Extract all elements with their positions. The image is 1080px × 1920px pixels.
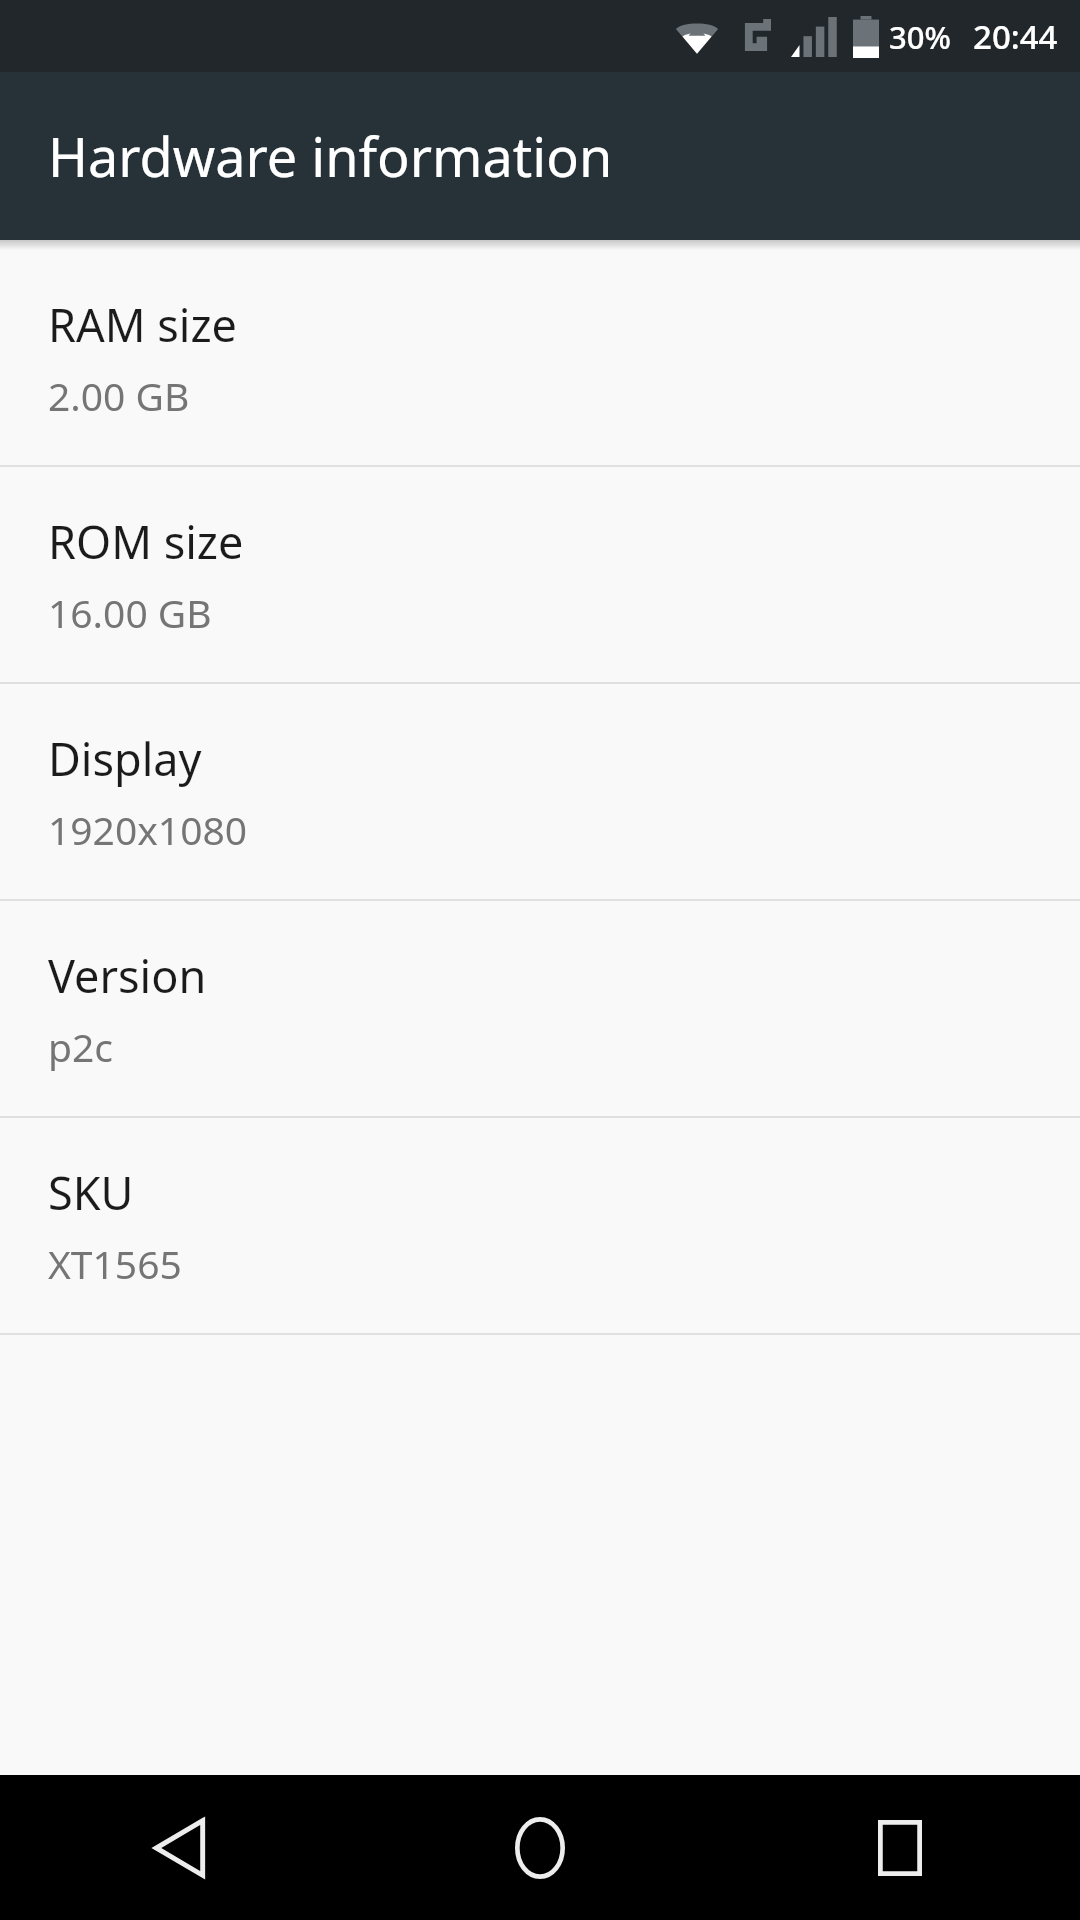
staticText: RAM size: [48, 294, 237, 355]
button[interactable]: SKU: [0, 1118, 1080, 1333]
staticText: p2c: [48, 1020, 114, 1073]
staticText: 2.00 GB: [48, 369, 190, 422]
staticText: ROM size: [48, 511, 244, 572]
staticText: 1920x1080: [48, 803, 248, 856]
button[interactable]: Recent apps: [720, 1775, 1080, 1920]
staticText: Display: [48, 728, 202, 789]
button[interactable]: Back: [0, 1775, 360, 1920]
button[interactable]: Display: [0, 684, 1080, 899]
staticText: Hardware information: [48, 119, 613, 193]
button[interactable]: Version: [0, 901, 1080, 1116]
staticText: SKU: [48, 1162, 134, 1223]
button[interactable]: Home: [360, 1775, 720, 1920]
staticText: 16.00 GB: [48, 586, 212, 639]
staticText: Version: [48, 945, 207, 1006]
button[interactable]: ROM size: [0, 467, 1080, 682]
staticText: 20:44: [973, 14, 1058, 59]
staticText: 30%: [889, 16, 951, 58]
staticText: XT1565: [48, 1237, 182, 1290]
button[interactable]: RAM size: [0, 250, 1080, 465]
